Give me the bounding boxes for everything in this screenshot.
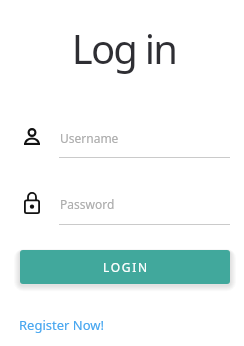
staticText: Register Now!	[19, 316, 104, 334]
staticText: LOGIN	[103, 259, 149, 275]
button[interactable]: Register Now!	[19, 316, 104, 334]
staticText: Username	[60, 130, 119, 146]
button[interactable]: Username field	[20, 124, 230, 162]
button[interactable]: Password field	[20, 190, 230, 228]
button[interactable]: LOGIN	[20, 250, 230, 284]
staticText: Password	[60, 196, 115, 212]
staticText: Log in	[2, 21, 244, 75]
